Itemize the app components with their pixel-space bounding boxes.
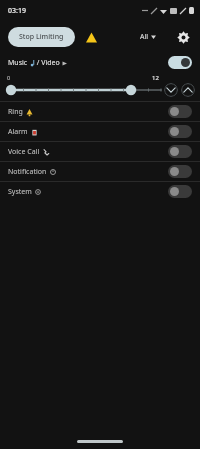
staticText: / Video [35, 58, 62, 68]
button[interactable]: Warning [84, 30, 98, 44]
button[interactable]: All [137, 29, 159, 45]
button[interactable]: Ring [0, 102, 200, 121]
button[interactable]: Voice Call [0, 142, 200, 161]
staticText: Notification [8, 167, 47, 177]
staticText: 12 [152, 74, 159, 82]
button[interactable]: Increase [181, 83, 195, 97]
button[interactable]: Music Video toggle [168, 56, 192, 69]
staticText: Stop Limiting [19, 32, 64, 42]
staticText: All [140, 32, 149, 42]
staticText: 0 [7, 74, 11, 81]
staticText: Voice Call [8, 147, 40, 157]
button[interactable]: Stop Limiting [8, 27, 75, 47]
button[interactable]: Alarm [0, 122, 200, 141]
button[interactable]: Settings [173, 27, 193, 47]
button[interactable]: System [0, 182, 200, 201]
staticText: Music [8, 58, 30, 68]
staticText: Ring [8, 107, 23, 117]
staticText: 03:19 [8, 6, 26, 16]
staticText: Alarm [8, 127, 28, 137]
button[interactable]: Decrease [164, 83, 178, 97]
staticText: System [8, 187, 32, 197]
button[interactable]: Notification [0, 162, 200, 181]
